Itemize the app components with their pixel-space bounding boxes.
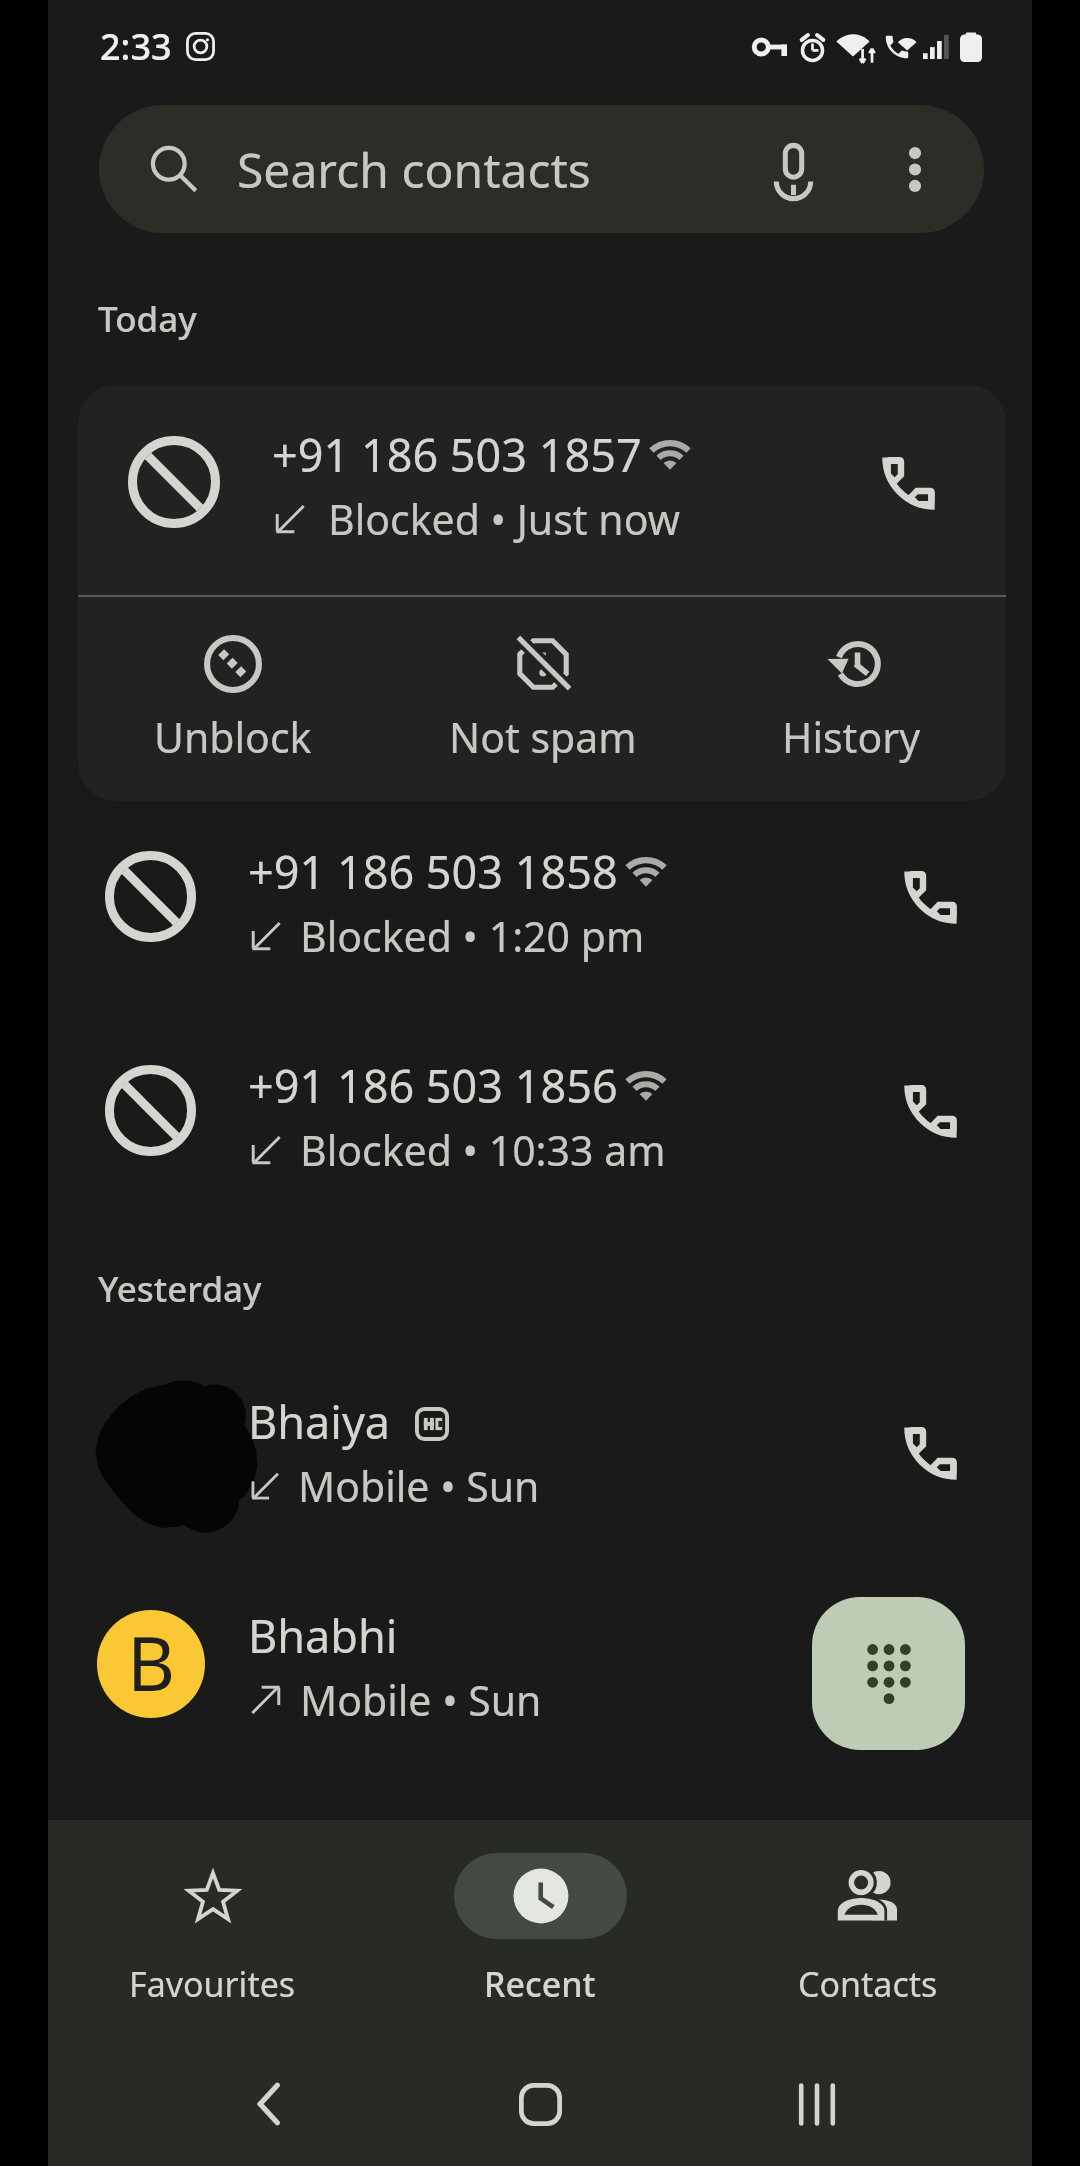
staticText: Yesterday	[98, 1265, 262, 1313]
button[interactable]: Favourites	[48, 1820, 376, 2007]
staticText: B	[127, 1612, 176, 1713]
staticText: Blocked • 1:20 pm	[300, 908, 645, 964]
button[interactable]: Call	[881, 846, 981, 946]
button[interactable]: Search contacts	[99, 105, 984, 233]
button[interactable]: History	[697, 597, 1006, 765]
button[interactable]: Recents	[772, 2059, 862, 2149]
staticText: History	[782, 709, 921, 765]
staticText: Mobile • Sun	[298, 1458, 540, 1514]
staticText: Today	[98, 295, 197, 343]
staticText: Search contacts	[237, 137, 591, 202]
button[interactable]: B	[48, 1574, 778, 1754]
staticText: Bhaiya	[248, 1391, 391, 1452]
button[interactable]: Recent	[376, 1820, 704, 2007]
button[interactable]: Voice search	[750, 126, 836, 212]
button[interactable]: Home	[495, 2059, 585, 2149]
staticText: Unblock	[154, 709, 312, 765]
staticText: Recent	[484, 1961, 596, 2007]
button[interactable]: Bhaiya	[48, 1362, 1032, 1542]
button[interactable]: Back	[224, 2059, 314, 2149]
button[interactable]: Unblock	[78, 597, 388, 765]
staticText: Not spam	[449, 709, 637, 765]
button[interactable]: Dialpad	[812, 1597, 965, 1750]
staticText: Favourites	[129, 1961, 296, 2007]
staticText: Contacts	[798, 1961, 938, 2007]
staticText: Blocked • 10:33 am	[300, 1122, 666, 1178]
staticText: Mobile • Sun	[300, 1672, 542, 1728]
staticText: +91 186 503 1858	[248, 841, 618, 902]
button[interactable]: Call	[859, 432, 959, 532]
staticText: +91 186 503 1856	[248, 1055, 618, 1116]
staticText: Blocked • Just now	[328, 491, 680, 547]
staticText: +91 186 503 1857	[272, 424, 642, 485]
button[interactable]: Call	[881, 1060, 981, 1160]
staticText: Bhabhi	[248, 1605, 398, 1666]
button[interactable]: Not spam	[388, 597, 697, 765]
button[interactable]: More options	[872, 126, 958, 212]
button[interactable]: Call	[881, 1402, 981, 1502]
button[interactable]: +91 186 503 1858	[48, 806, 1032, 986]
button[interactable]: Contacts	[704, 1820, 1032, 2007]
button[interactable]: +91 186 503 1857	[78, 385, 1006, 596]
staticText: 2:33	[100, 22, 172, 71]
button[interactable]: +91 186 503 1856	[48, 1020, 1032, 1200]
